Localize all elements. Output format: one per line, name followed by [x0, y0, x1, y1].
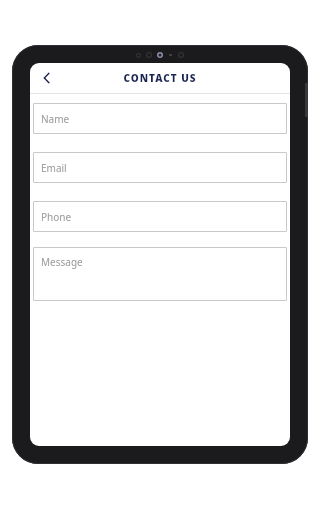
staticText: Message	[41, 255, 83, 269]
staticText: Name	[41, 112, 70, 126]
staticText: CONTACT US	[30, 71, 290, 85]
button[interactable]: Message	[33, 247, 287, 301]
button[interactable]: Phone	[33, 201, 287, 232]
staticText: Email	[41, 161, 67, 175]
button[interactable]: Back	[35, 66, 59, 90]
button[interactable]: Email	[33, 152, 287, 183]
staticText: Phone	[41, 210, 72, 224]
button[interactable]: Name	[33, 103, 287, 134]
